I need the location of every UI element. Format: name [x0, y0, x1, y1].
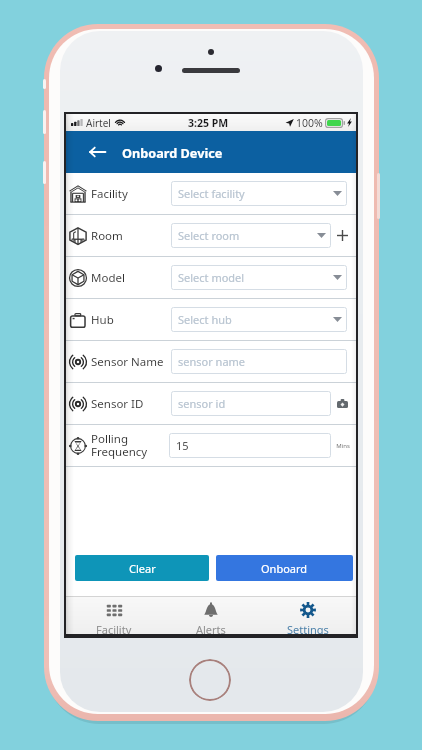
button[interactable]: Back	[85, 140, 109, 164]
staticText: Sensor Name	[91, 354, 164, 370]
staticText: Onboard	[261, 561, 308, 576]
button[interactable]: Sensor ID	[66, 383, 356, 424]
button[interactable]: Room	[66, 215, 356, 256]
staticText: Airtel	[86, 116, 111, 130]
staticText: Clear	[129, 561, 156, 576]
staticText: Select room	[178, 228, 240, 243]
staticText: Polling Frequency	[91, 431, 148, 460]
staticText: sensor id	[178, 396, 226, 411]
staticText: Select model	[178, 270, 245, 285]
staticText: Facility	[91, 186, 128, 202]
staticText: Model	[91, 270, 125, 286]
staticText: Select facility	[178, 186, 245, 201]
staticText: 3:25 PM	[188, 116, 229, 130]
staticText: Onboard Device	[122, 144, 223, 161]
button[interactable]: Scan code with camera	[331, 391, 354, 416]
staticText: Settings	[287, 622, 329, 634]
staticText: 100%	[296, 116, 323, 130]
staticText: sensor name	[178, 354, 246, 369]
staticText: Sensor ID	[91, 396, 144, 412]
button[interactable]: Sensor Name	[66, 341, 356, 382]
button[interactable]: Facility	[66, 173, 356, 214]
button[interactable]: Facility tab	[66, 597, 162, 634]
staticText: Room	[91, 228, 123, 244]
button[interactable]: Model	[66, 257, 356, 298]
staticText: 15	[176, 438, 189, 453]
staticText: Facility	[96, 622, 132, 634]
button[interactable]: Polling Frequency	[66, 425, 356, 466]
button[interactable]: Alerts tab	[162, 597, 259, 634]
button[interactable]: Clear	[75, 555, 209, 581]
staticText: Hub	[91, 312, 114, 328]
staticText: Mins	[336, 442, 350, 450]
button[interactable]: Hub	[66, 299, 356, 340]
button[interactable]: Onboard	[216, 555, 353, 581]
button[interactable]: Add room	[331, 223, 354, 248]
staticText: Select hub	[178, 312, 232, 327]
button[interactable]: Settings tab	[259, 597, 356, 634]
staticText: Alerts	[196, 622, 226, 634]
